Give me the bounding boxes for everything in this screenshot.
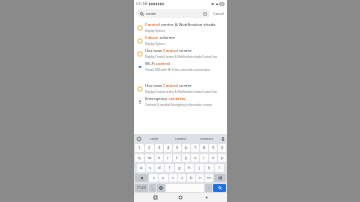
button[interactable]: h [185,164,194,172]
button[interactable]: Home [176,193,185,202]
staticText: Display System [145,42,165,46]
staticText: 2 [148,145,151,151]
button[interactable]: a [137,164,145,172]
button[interactable]: e [155,154,163,162]
button[interactable]: 5 [173,144,181,152]
staticText: w [148,155,152,161]
button[interactable]: 7 [191,144,199,152]
staticText: g [178,165,181,171]
staticText: l [219,165,221,171]
button[interactable]: Shift [135,174,148,182]
button[interactable]: c [169,174,177,182]
button[interactable]: Recents [151,193,160,202]
button[interactable]: g [175,164,184,172]
staticText: Emergency contacts [145,96,186,102]
button[interactable]: Emoji [157,184,165,192]
button[interactable]: w [145,154,154,162]
button[interactable]: u [191,154,199,162]
staticText: f [169,165,171,171]
staticText: Display Control centre & Notification sh… [145,90,218,94]
button[interactable]: p [218,154,226,162]
staticText: p [221,155,224,161]
button[interactable]: control [168,134,194,143]
staticText: i [203,155,205,161]
button[interactable]: Emergency contacts [134,95,227,108]
button[interactable]: 6 [182,144,190,152]
button[interactable]: , [149,184,156,192]
staticText: q [138,155,141,161]
staticText: Wi-Fi control [145,61,171,67]
button[interactable]: t [173,154,181,162]
staticText: a [140,165,143,171]
button[interactable]: Clear search [202,11,207,16]
staticText: Display System [145,29,165,33]
button[interactable]: Cancel [212,9,225,18]
staticText: 8 [203,145,206,151]
button[interactable]: m [205,174,213,182]
button[interactable]: 9 [209,144,217,152]
button[interactable]: r [164,154,172,162]
button[interactable]: 4 [164,144,172,152]
button[interactable]: z [149,174,158,182]
staticText: 1 [138,145,141,151]
staticText: control [175,136,187,141]
button[interactable]: Colour scheme [134,34,227,47]
button[interactable]: x [159,174,168,182]
button[interactable]: contract [194,134,220,143]
staticText: s [149,165,152,171]
staticText: . [208,185,210,191]
staticText: u [194,155,197,161]
staticText: Contacts & medical Emergency information… [145,103,213,107]
button[interactable]: Back [202,193,211,202]
button[interactable]: 1 [135,144,144,152]
button[interactable]: q [135,154,144,162]
button[interactable]: Wi-Fi control [134,60,227,73]
staticText: Private DNS with Wi-Fi bar, automatic co… [145,68,211,72]
staticText: 9 [212,145,215,151]
button[interactable]: 8 [200,144,208,152]
button[interactable]: f [165,164,174,172]
button[interactable]: 0 [218,144,226,152]
staticText: 7 [194,145,197,151]
button[interactable]: l [215,164,224,172]
button[interactable]: k [205,164,214,172]
button[interactable]: Use new Control centre [134,47,227,60]
staticText: 5 [176,145,179,151]
staticText: z [153,175,155,181]
staticText: contract [200,136,214,141]
button[interactable]: s [146,164,154,172]
button[interactable]: v [178,174,186,182]
button[interactable]: contr [141,134,168,143]
button[interactable]: Expand suggestions [136,136,141,141]
staticText: o [212,155,215,161]
staticText: 6 [185,145,188,151]
button[interactable]: Voice input [220,136,225,141]
button[interactable]: . [205,184,212,192]
button[interactable]: ?123 [135,184,148,192]
staticText: 0 [221,145,224,151]
button[interactable]: y [182,154,190,162]
button[interactable]: i [200,154,208,162]
button[interactable]: 3 [155,144,163,152]
staticText: c [172,175,175,181]
staticText: contr [150,136,159,141]
staticText: Use new Control centre [145,83,192,89]
staticText: y [185,155,188,161]
staticText: , [152,185,154,191]
button[interactable]: Use new Control centre [134,82,227,95]
staticText: ?123 [137,185,147,191]
button[interactable]: contr [137,9,210,18]
staticText: n [199,175,202,181]
button[interactable]: b [187,174,195,182]
button[interactable]: d [155,164,164,172]
button[interactable]: Control centre & Notification shade [134,21,227,34]
staticText: m [207,175,211,181]
button[interactable]: j [195,164,204,172]
button[interactable]: 2 [145,144,154,152]
staticText: v [181,175,184,181]
button[interactable]: o [209,154,217,162]
button[interactable]: Backspace [214,174,226,182]
button[interactable]: n [196,174,204,182]
button[interactable]: Search [213,184,226,192]
